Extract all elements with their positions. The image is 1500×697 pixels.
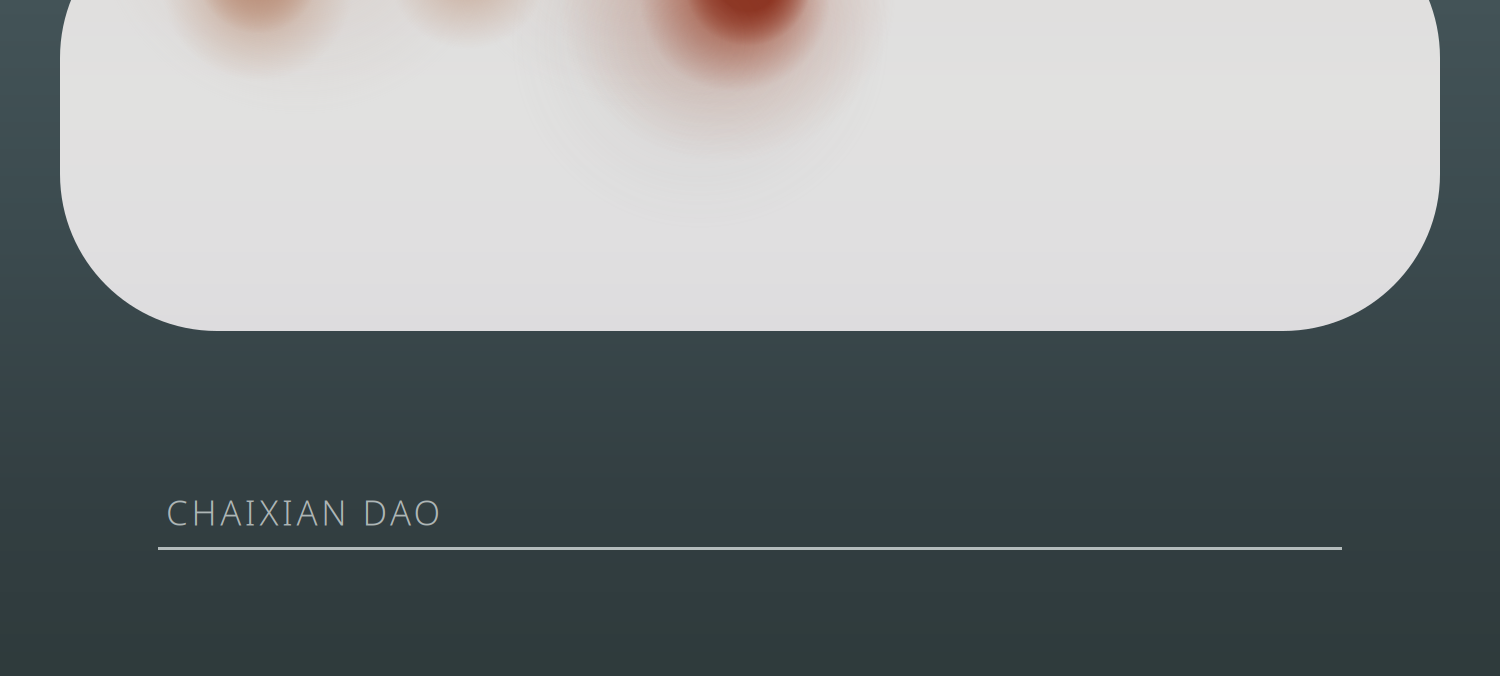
staticText: CHAIXIAN DAO xyxy=(166,489,441,535)
